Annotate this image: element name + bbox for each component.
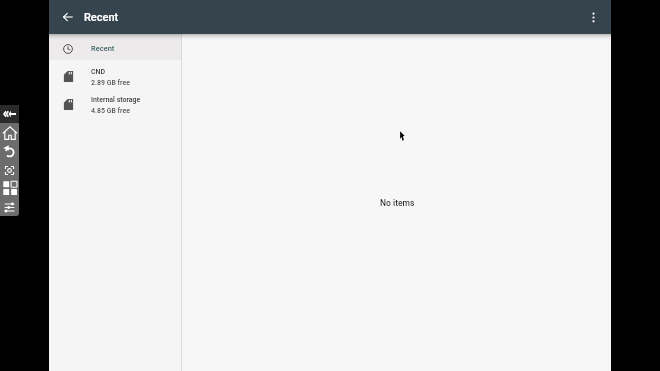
button[interactable]: Back bbox=[54, 3, 82, 31]
button[interactable]: Screenshot bbox=[0, 161, 19, 179]
button[interactable]: Internal storage bbox=[49, 90, 181, 118]
button[interactable]: Apps bbox=[0, 179, 19, 197]
button[interactable]: Collapse bbox=[0, 105, 19, 123]
staticText: Internal storage bbox=[91, 96, 141, 104]
staticText: 4.85 GB free bbox=[91, 107, 130, 115]
staticText: Recent bbox=[84, 11, 119, 24]
button[interactable]: Settings bbox=[0, 198, 19, 216]
staticText: CND bbox=[91, 68, 106, 76]
button[interactable]: Back bbox=[0, 142, 19, 160]
button[interactable]: CND bbox=[49, 62, 181, 90]
button[interactable]: Recent bbox=[49, 34, 181, 60]
staticText: 2.89 GB free bbox=[91, 79, 130, 87]
button[interactable]: Home bbox=[0, 124, 19, 142]
button[interactable]: More options bbox=[578, 2, 608, 32]
staticText: Recent bbox=[91, 44, 115, 53]
staticText: No items bbox=[380, 198, 415, 208]
